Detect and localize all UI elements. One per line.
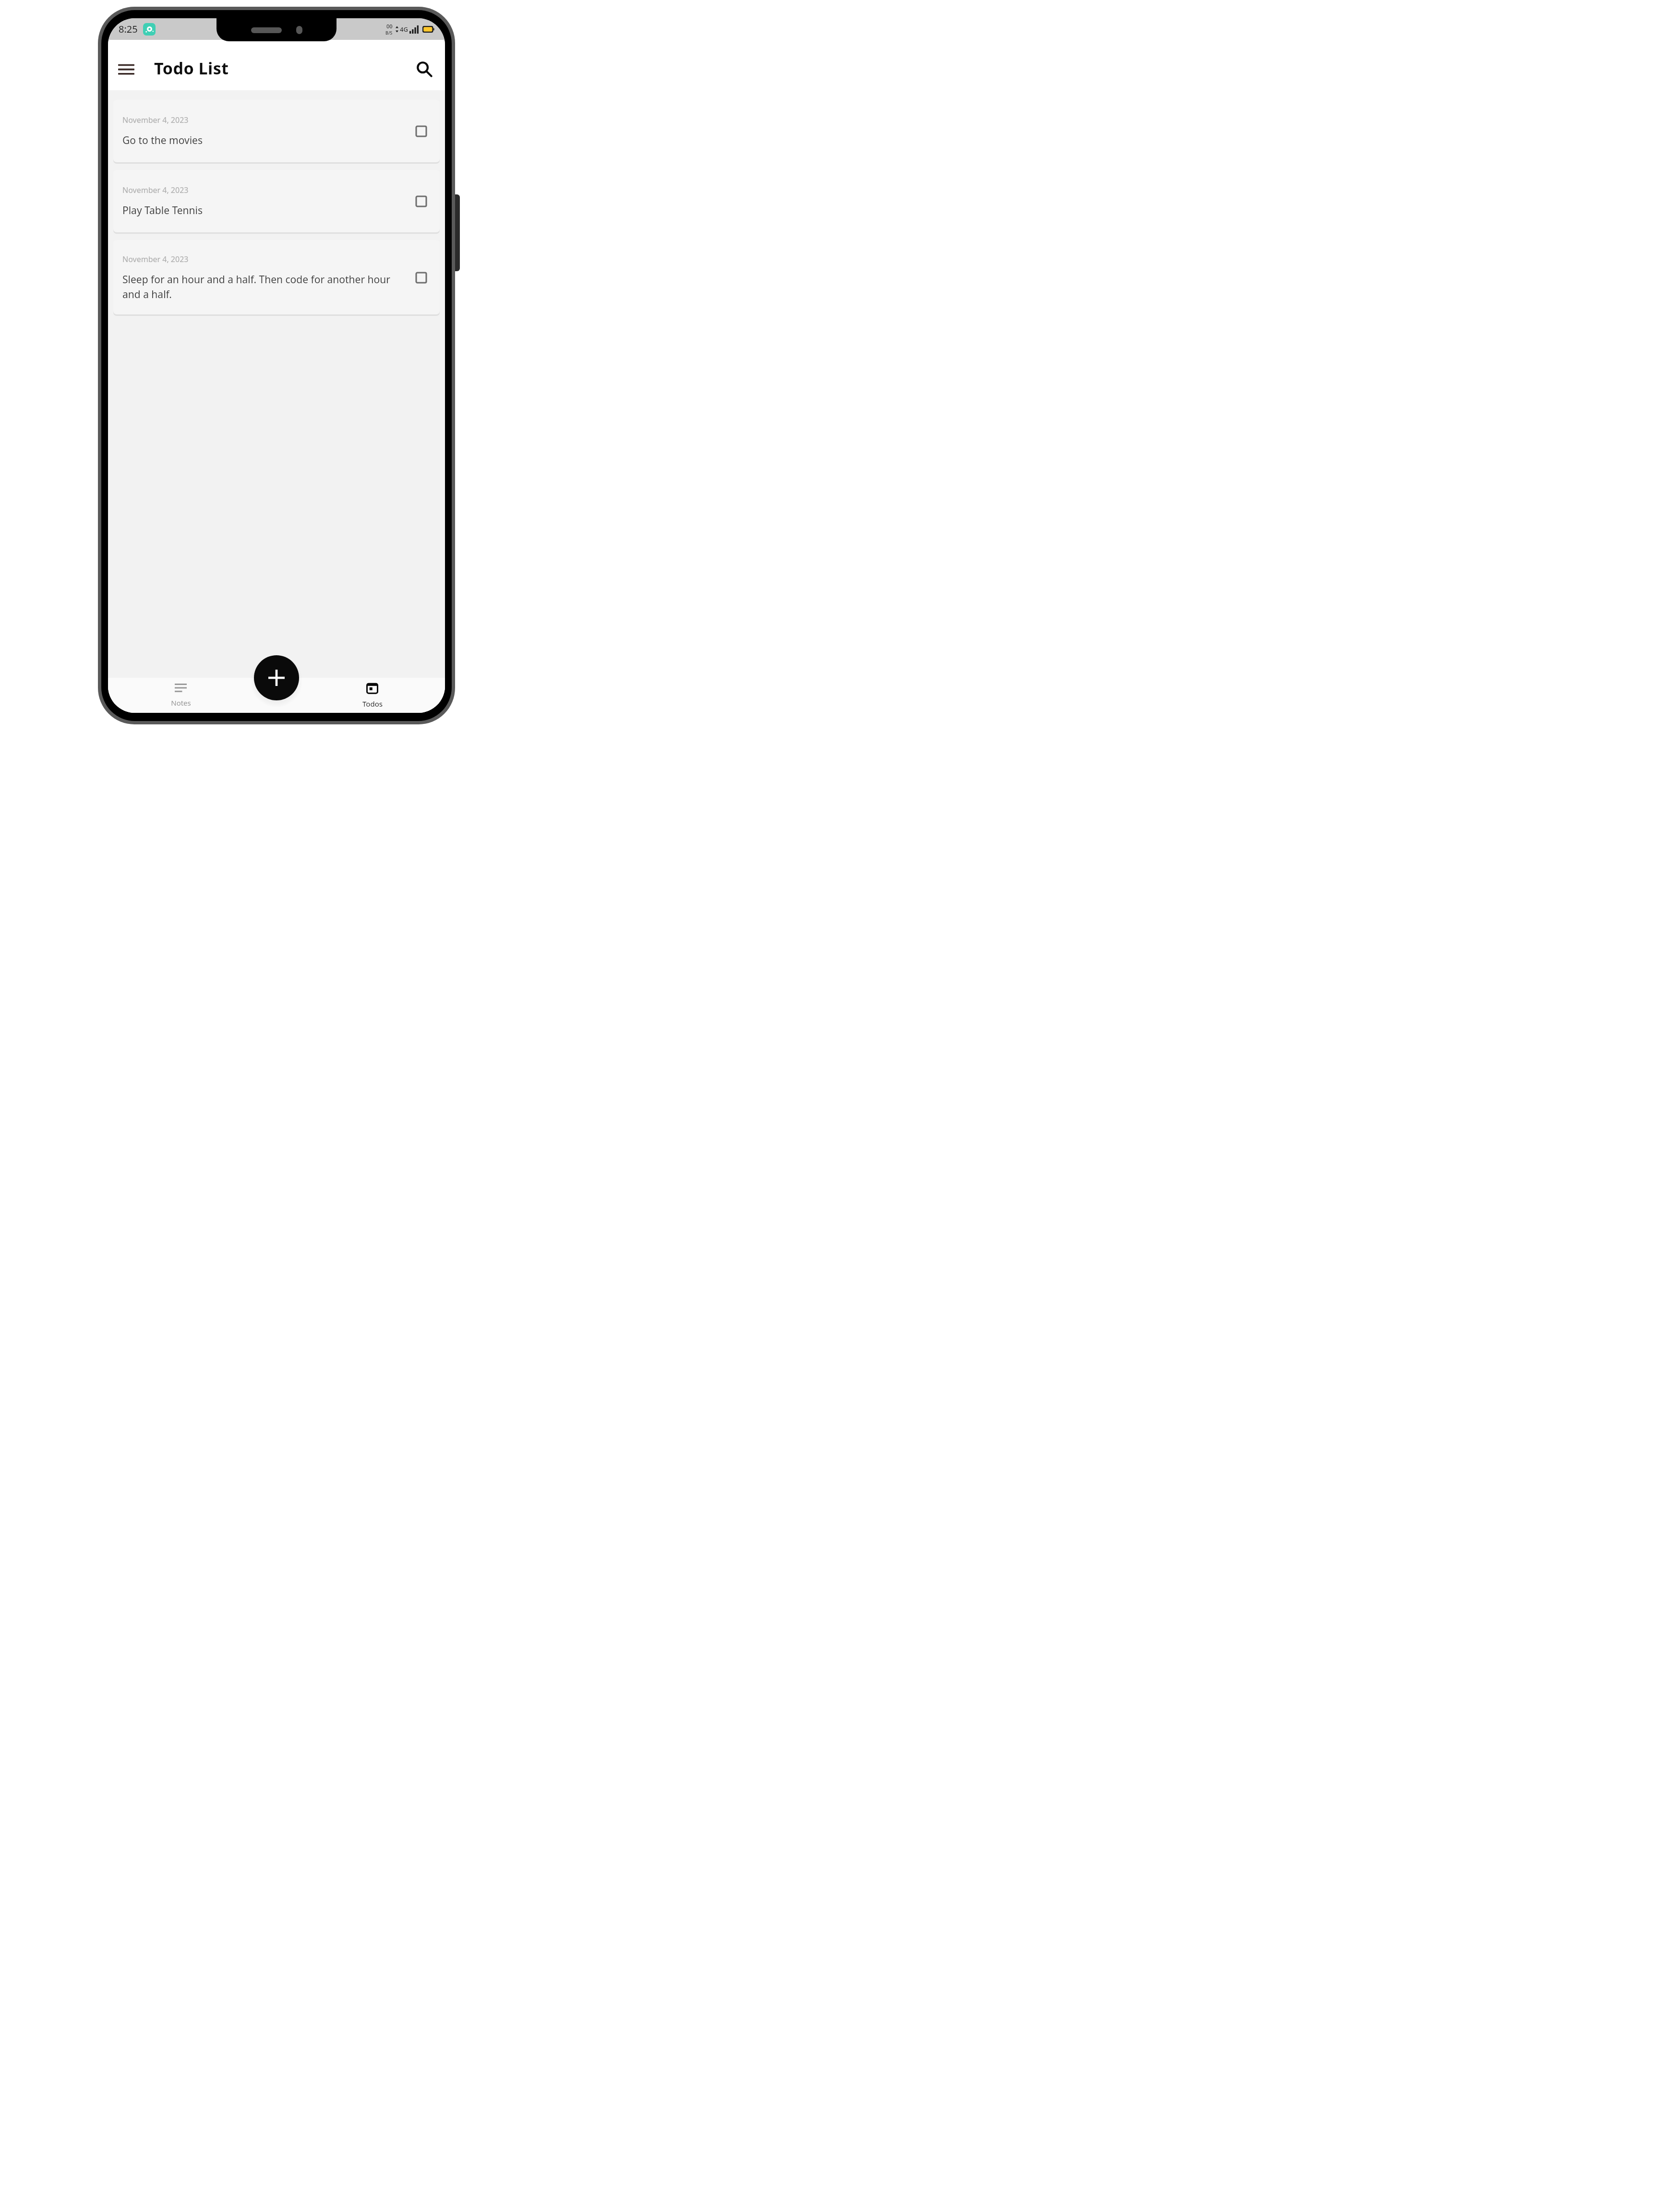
staticText: November 4, 2023 bbox=[122, 254, 189, 264]
staticText: Todos bbox=[362, 699, 383, 709]
button[interactable]: Toggle todo complete bbox=[411, 268, 431, 287]
staticText: November 4, 2023 bbox=[122, 185, 189, 195]
button[interactable]: Notes bbox=[108, 678, 253, 713]
staticText: 8:25 bbox=[119, 23, 138, 36]
button[interactable]: Menu bbox=[113, 56, 140, 83]
button[interactable]: Toggle todo complete bbox=[411, 121, 431, 141]
staticText: November 4, 2023 bbox=[122, 115, 189, 125]
staticText: Play Table Tennis bbox=[122, 204, 203, 217]
button[interactable]: Todos bbox=[300, 678, 445, 713]
staticText: Sleep for an hour and a half. Then code … bbox=[122, 273, 405, 301]
button[interactable]: Search bbox=[410, 55, 438, 83]
staticText: 00 bbox=[386, 23, 393, 30]
button[interactable]: Toggle todo complete bbox=[411, 192, 431, 211]
staticText: 4G bbox=[400, 25, 408, 34]
staticText: Todo List bbox=[154, 57, 229, 79]
button[interactable]: November 4, 2023 bbox=[113, 100, 440, 162]
staticText: Notes bbox=[171, 698, 191, 708]
staticText: Go to the movies bbox=[122, 133, 203, 147]
staticText: B/S bbox=[385, 30, 393, 36]
button[interactable]: November 4, 2023 bbox=[113, 240, 440, 314]
button[interactable]: Add todo bbox=[254, 655, 299, 700]
button[interactable]: November 4, 2023 bbox=[113, 170, 440, 232]
